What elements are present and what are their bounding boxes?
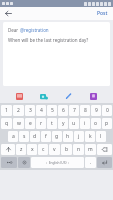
button[interactable]: m xyxy=(85,144,96,155)
button[interactable]: Symbols xyxy=(1,157,17,168)
button[interactable]: k xyxy=(85,131,95,142)
staticText: . xyxy=(90,159,92,166)
staticText: j xyxy=(78,133,80,140)
staticText: w xyxy=(17,120,21,127)
button[interactable]: Keyboard settings xyxy=(18,157,30,168)
button[interactable]: w xyxy=(13,118,24,129)
staticText: l xyxy=(100,133,102,140)
staticText: 9 xyxy=(95,107,98,114)
staticText: 8 xyxy=(84,107,87,114)
button[interactable]: j xyxy=(74,131,84,142)
button[interactable]: b xyxy=(61,144,72,155)
button[interactable]: Take photo xyxy=(38,91,49,102)
button[interactable]: Backspace xyxy=(97,144,112,155)
button[interactable]: e xyxy=(25,118,35,129)
button[interactable]: h xyxy=(63,131,73,142)
button[interactable]: v xyxy=(49,144,60,155)
button[interactable]: 9 xyxy=(91,105,101,116)
staticText: 4 xyxy=(40,107,43,114)
staticText: 5 xyxy=(51,107,54,114)
button[interactable]: t xyxy=(47,118,57,129)
staticText: z xyxy=(20,146,23,153)
button[interactable]: Enter xyxy=(97,157,112,168)
staticText: u xyxy=(72,120,76,127)
staticText: m xyxy=(88,146,93,153)
button[interactable]: f xyxy=(41,131,51,142)
button[interactable]: x xyxy=(27,144,37,155)
button[interactable]: ‹ English (US) › xyxy=(31,157,84,168)
button[interactable]: Post xyxy=(95,9,110,18)
button[interactable]: p xyxy=(102,118,112,129)
staticText: g xyxy=(55,133,59,140)
staticText: f xyxy=(45,133,47,140)
button[interactable]: c xyxy=(38,144,48,155)
staticText: e xyxy=(29,120,32,127)
staticText: o xyxy=(94,120,98,127)
button[interactable]: z xyxy=(16,144,26,155)
button[interactable]: 2 xyxy=(13,105,24,116)
staticText: ‹ English (US) › xyxy=(46,161,69,165)
staticText: Dear xyxy=(8,27,20,33)
button[interactable]: q xyxy=(1,118,12,129)
staticText: @registration xyxy=(20,27,49,33)
button[interactable]: 3 xyxy=(25,105,35,116)
staticText: 1 xyxy=(5,107,8,114)
staticText: k xyxy=(89,133,92,140)
staticText: n xyxy=(77,146,81,153)
button[interactable]: a xyxy=(8,131,18,142)
staticText: q xyxy=(5,120,9,127)
staticText: t xyxy=(51,120,53,127)
button[interactable]: s xyxy=(19,131,29,142)
button[interactable]: 5 xyxy=(47,105,57,116)
button[interactable]: 8 xyxy=(80,105,90,116)
staticText: i xyxy=(84,120,86,127)
staticText: 6 xyxy=(62,107,65,114)
button[interactable]: 6 xyxy=(58,105,68,116)
staticText: y xyxy=(62,120,65,127)
staticText: r xyxy=(40,120,43,127)
button[interactable]: Back xyxy=(3,8,14,19)
staticText: v xyxy=(53,146,56,153)
button[interactable]: g xyxy=(52,131,62,142)
staticText: 2 xyxy=(17,107,20,114)
staticText: Post xyxy=(97,10,108,17)
staticText: d xyxy=(33,133,37,140)
staticText: h xyxy=(66,133,70,140)
staticText: c xyxy=(42,146,45,153)
button[interactable]: Shift xyxy=(1,144,15,155)
button[interactable]: Add attachment xyxy=(88,91,99,102)
button[interactable]: i xyxy=(80,118,90,129)
staticText: When will be the last registration day? xyxy=(8,37,89,43)
button[interactable]: r xyxy=(36,118,46,129)
button[interactable]: u xyxy=(69,118,79,129)
button[interactable]: y xyxy=(58,118,68,129)
staticText: 3 xyxy=(29,107,32,114)
button[interactable]: 1 xyxy=(1,105,12,116)
staticText: b xyxy=(65,146,69,153)
staticText: p xyxy=(105,120,109,127)
button[interactable]: 4 xyxy=(36,105,46,116)
button[interactable]: l xyxy=(96,131,106,142)
button[interactable]: d xyxy=(30,131,40,142)
staticText: 7 xyxy=(73,107,76,114)
button[interactable]: 7 xyxy=(69,105,79,116)
button[interactable]: n xyxy=(73,144,84,155)
staticText: 0 xyxy=(106,107,109,114)
staticText: s xyxy=(23,133,26,140)
button[interactable]: o xyxy=(91,118,101,129)
button[interactable]: . xyxy=(85,157,96,168)
button[interactable]: Dear xyxy=(3,22,110,86)
button[interactable]: 0 xyxy=(102,105,112,116)
staticText: a xyxy=(12,133,15,140)
button[interactable]: Attach file xyxy=(63,91,74,102)
button[interactable]: Add image xyxy=(14,91,25,102)
staticText: x xyxy=(31,146,34,153)
